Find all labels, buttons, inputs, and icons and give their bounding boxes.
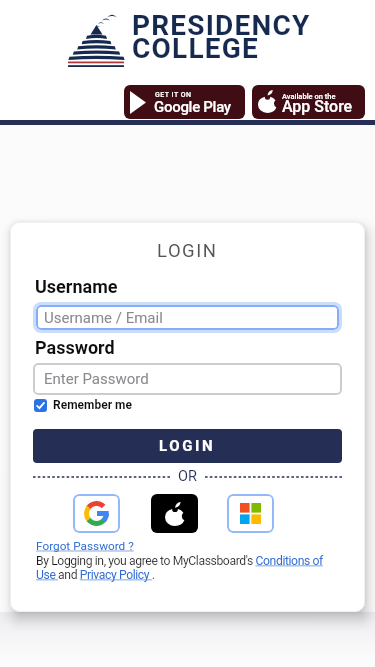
staticText: Use and Privacy Policy . bbox=[36, 568, 155, 582]
staticText: Username / Email bbox=[44, 309, 163, 327]
button[interactable]: Available on the bbox=[252, 85, 365, 119]
staticText: Password bbox=[35, 337, 115, 358]
staticText: PRESIDENCY bbox=[132, 9, 311, 42]
staticText: LOGIN bbox=[159, 437, 216, 455]
staticText: Available on the bbox=[282, 92, 336, 101]
staticText: GET IT ON bbox=[155, 91, 192, 99]
button[interactable] bbox=[151, 494, 198, 533]
button[interactable]: Username / Email bbox=[33, 302, 342, 333]
button[interactable]: LOGIN bbox=[33, 429, 342, 463]
staticText: Remember me bbox=[53, 398, 132, 412]
button[interactable] bbox=[73, 494, 120, 533]
button[interactable]: Forgot Password ? bbox=[36, 539, 134, 553]
staticText: By Logging in, you agree to MyClassboard… bbox=[36, 554, 323, 568]
button[interactable] bbox=[227, 494, 274, 533]
staticText: Username bbox=[35, 276, 118, 297]
staticText: App Store bbox=[282, 97, 353, 116]
button[interactable]: GET IT ON bbox=[124, 85, 245, 119]
staticText: Google Play bbox=[154, 98, 231, 116]
staticText: OR bbox=[178, 468, 197, 485]
staticText: LOGIN bbox=[157, 240, 218, 262]
staticText: COLLEGE bbox=[132, 32, 259, 65]
button[interactable]: Remember me bbox=[34, 398, 132, 412]
staticText: Enter Password bbox=[44, 370, 149, 388]
button[interactable]: Enter Password bbox=[33, 363, 342, 395]
